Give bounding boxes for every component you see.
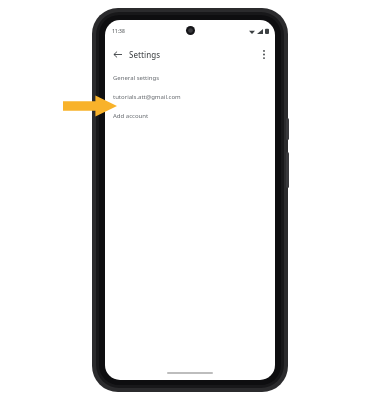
other: Volume buttons bbox=[286, 152, 289, 188]
button[interactable]: Back bbox=[109, 46, 125, 62]
button[interactable]: tutorials.att@gmail.com bbox=[105, 91, 275, 103]
staticText: 11:38 bbox=[112, 28, 125, 35]
staticText: Add account bbox=[113, 112, 149, 120]
staticText: tutorials.att@gmail.com bbox=[113, 93, 181, 101]
staticText: General settings bbox=[113, 74, 160, 82]
button[interactable]: More options bbox=[256, 46, 272, 62]
other: Pointer to Add account bbox=[63, 94, 117, 118]
button[interactable]: General settings bbox=[105, 72, 275, 84]
staticText: Settings bbox=[129, 49, 161, 60]
other: Power button bbox=[286, 118, 289, 140]
button[interactable]: Add account bbox=[105, 110, 275, 122]
